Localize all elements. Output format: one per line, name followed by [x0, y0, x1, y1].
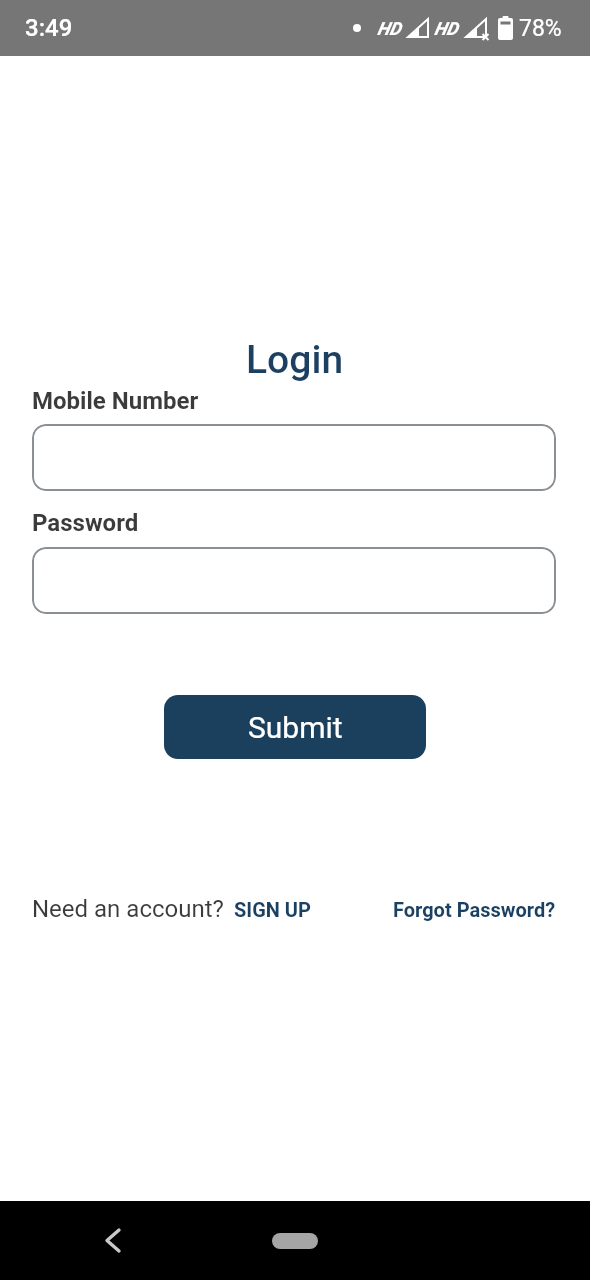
staticText: SIGN UP — [234, 898, 311, 921]
button[interactable]: Forgot Password? — [393, 898, 556, 921]
button[interactable] — [32, 547, 556, 614]
staticText: Need an account? — [32, 895, 224, 923]
staticText: Mobile Number — [32, 387, 199, 415]
staticText: 3:49 — [25, 14, 73, 42]
staticText: Submit — [248, 710, 343, 745]
staticText: 78% — [519, 15, 562, 42]
staticText: HD — [434, 18, 458, 39]
staticText: HD — [377, 18, 401, 39]
staticText: Forgot Password? — [393, 898, 556, 921]
staticText: Password — [32, 509, 139, 537]
button[interactable] — [272, 1233, 318, 1249]
staticText: Login — [246, 337, 344, 383]
button[interactable]: SIGN UP — [234, 898, 311, 921]
button[interactable]: Submit — [164, 695, 426, 759]
button[interactable] — [32, 424, 556, 491]
button[interactable] — [93, 1220, 133, 1260]
